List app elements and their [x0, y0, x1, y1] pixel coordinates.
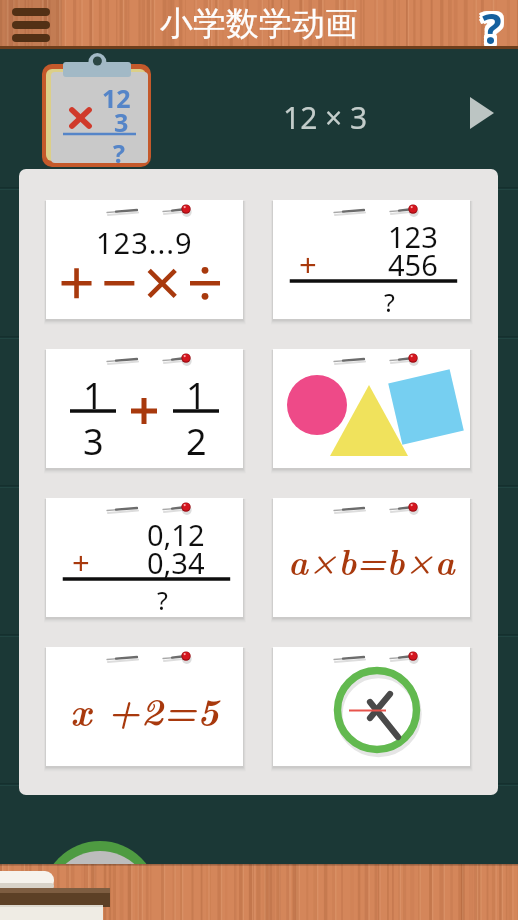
staticText: + — [299, 243, 317, 285]
staticText: + — [72, 541, 90, 583]
staticText: ? — [485, 0, 505, 46]
staticText: 1 — [186, 371, 207, 420]
staticText: 12 × 3 — [283, 97, 368, 138]
staticText: 12 — [102, 81, 131, 115]
staticText: ? — [157, 583, 168, 617]
staticText: 123 — [388, 217, 438, 256]
staticText: ? — [485, 0, 505, 49]
button[interactable]: 123...9 — [46, 200, 243, 319]
staticText: 0,34 — [147, 543, 205, 582]
button[interactable]: Menu — [0, 0, 62, 49]
staticText: x +2=5 — [70, 681, 220, 736]
staticText: ? — [479, 0, 499, 49]
staticText: ? — [479, 3, 499, 52]
button[interactable] — [273, 647, 470, 766]
staticText: 456 — [388, 245, 438, 284]
staticText: 123...9 — [96, 223, 193, 262]
staticText: 0,12 — [147, 515, 205, 554]
button[interactable] — [273, 349, 470, 468]
staticText: 3 — [114, 105, 129, 139]
button[interactable]: 123 — [273, 200, 470, 319]
staticText: ? — [482, 0, 502, 46]
staticText: 1 — [83, 371, 104, 420]
staticText: ? — [482, 0, 502, 49]
staticText: ? — [482, 3, 502, 52]
button[interactable]: x +2=5 — [46, 647, 243, 766]
button[interactable]: a×b=b×a — [273, 498, 470, 617]
button[interactable]: 0,12 — [46, 498, 243, 617]
staticText: 3 — [83, 417, 104, 466]
button[interactable]: Play — [455, 87, 507, 139]
button[interactable]: 1 — [46, 349, 243, 468]
staticText: ? — [485, 3, 505, 52]
staticText: 2 — [186, 417, 207, 466]
button[interactable]: Help — [466, 0, 518, 49]
staticText: ? — [479, 0, 499, 46]
staticText: 小学数学动画 — [160, 3, 358, 45]
staticText: a×b=b×a — [288, 535, 455, 584]
staticText: ? — [113, 136, 125, 170]
staticText: ? — [384, 285, 395, 319]
